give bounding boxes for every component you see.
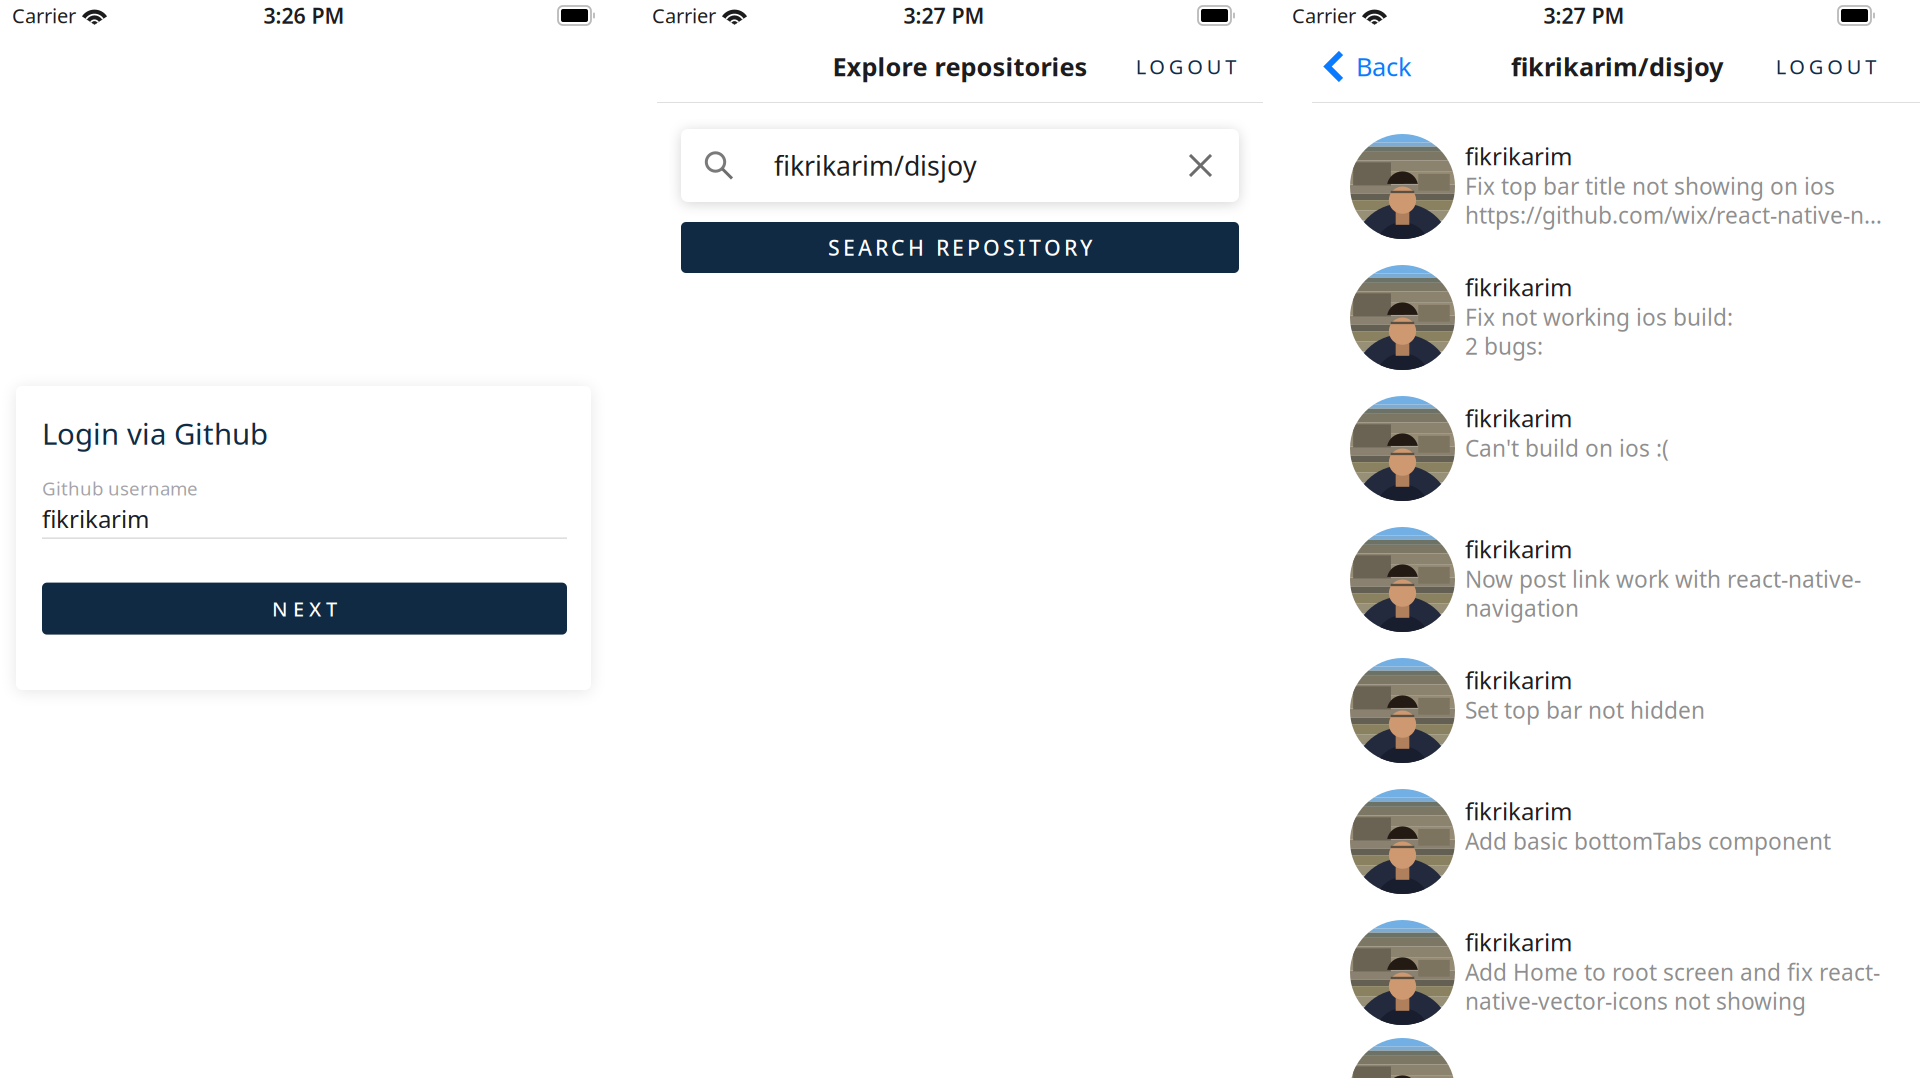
staticText: Explore repositories [832, 50, 1087, 83]
staticText: 3:27 PM [903, 1, 984, 30]
staticText: Set top bar not hidden [1465, 695, 1705, 725]
staticText: 3:26 PM [263, 1, 344, 30]
staticText: native-vector-icons not showing [1465, 986, 1806, 1016]
button[interactable]: NEXT [42, 583, 567, 635]
staticText: fikrikarim [1465, 533, 1572, 565]
staticText: fikrikarim [1465, 795, 1572, 827]
staticText: fikrikarim [1465, 402, 1572, 434]
staticText: https://github.com/wix/react-native-n… [1465, 200, 1882, 230]
staticText: fikrikarim [1465, 664, 1572, 696]
button[interactable]: LOGOUT [1127, 44, 1245, 88]
staticText: Now post link work with react-native- [1465, 564, 1861, 594]
button[interactable]: fikrikarim [1280, 514, 1920, 645]
button[interactable]: Back [1324, 44, 1412, 89]
staticText: 3:27 PM [1543, 1, 1624, 30]
button[interactable]: fikrikarim [1280, 645, 1920, 776]
staticText: Add Home to root screen and fix react- [1465, 957, 1880, 987]
button[interactable]: fikrikarim [1280, 776, 1920, 907]
button[interactable]: fikrikarim [1280, 907, 1920, 1038]
staticText: SEARCH REPOSITORY [828, 233, 1092, 262]
staticText: fikrikarim [1465, 926, 1572, 958]
staticText: LOGOUT [1136, 53, 1236, 80]
staticText: fikrikarim/disjoy [1511, 50, 1723, 83]
staticText: Fix top bar title not showing on ios [1465, 171, 1835, 201]
staticText: Carrier [1292, 2, 1356, 29]
button[interactable]: fikrikarim [1280, 383, 1920, 514]
staticText: LOGOUT [1776, 53, 1876, 80]
staticText: fikrikarim [42, 503, 149, 535]
staticText: Add basic bottomTabs component [1465, 826, 1831, 856]
staticText: fikrikarim [1465, 271, 1572, 303]
staticText: fikrikarim/disjoy [774, 148, 977, 183]
staticText: Github username [42, 476, 198, 501]
staticText: Carrier [12, 2, 76, 29]
staticText: navigation [1465, 593, 1579, 623]
staticText: Can't build on ios :( [1465, 433, 1669, 463]
button[interactable]: LOGOUT [1767, 44, 1885, 88]
button[interactable]: fikrikarim [1280, 121, 1920, 252]
staticText: NEXT [272, 595, 337, 622]
staticText: Login via Github [42, 414, 268, 453]
button[interactable]: Clear search [1162, 133, 1239, 197]
staticText: Back [1356, 50, 1412, 83]
staticText: Carrier [652, 2, 716, 29]
button[interactable]: SEARCH REPOSITORY [681, 222, 1239, 273]
button[interactable]: fikrikarim [1280, 252, 1920, 383]
staticText: 2 bugs: [1465, 331, 1543, 361]
staticText: Fix not working ios build: [1465, 302, 1733, 332]
staticText: fikrikarim [1465, 140, 1572, 172]
